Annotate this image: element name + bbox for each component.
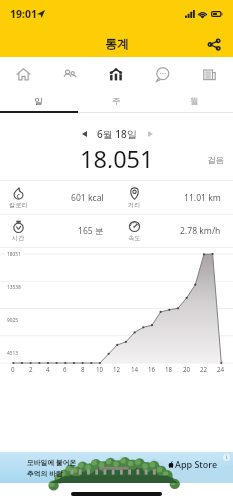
staticText: 2.78 km/h: [180, 225, 221, 237]
staticText: 18051: [7, 251, 21, 258]
staticText: 24: [217, 365, 225, 373]
staticText: 시간: [12, 234, 25, 242]
staticText: 일: [34, 96, 43, 107]
staticText: 속도: [128, 234, 141, 242]
button[interactable]: 시간: [0, 215, 116, 247]
staticText: 0: [11, 365, 15, 373]
staticText: 9025: [7, 317, 18, 324]
staticText: 16: [148, 365, 156, 373]
staticText: 칼로리: [9, 201, 28, 209]
staticText: 12: [113, 365, 121, 373]
staticText: 4513: [7, 350, 18, 357]
staticText: 11.01 km: [184, 192, 221, 204]
staticText: 20: [183, 365, 191, 373]
staticText: 22: [200, 365, 208, 373]
staticText: 주: [112, 96, 121, 107]
staticText: 거리: [128, 201, 141, 209]
staticText: 6월 18일: [97, 127, 137, 141]
staticText: 14: [131, 365, 139, 373]
button[interactable]: 일: [0, 91, 77, 113]
staticText: 18: [165, 365, 173, 373]
button[interactable]: Next day: [143, 127, 157, 141]
staticText: App Store: [175, 458, 218, 470]
staticText: 통계: [105, 36, 129, 51]
button[interactable]: Share: [200, 30, 228, 58]
button[interactable]: Previous day: [77, 127, 91, 141]
staticText: 601 kcal: [71, 192, 104, 204]
button[interactable]: 주: [77, 91, 155, 113]
staticText: 10: [96, 365, 104, 373]
staticText: 18,051: [80, 143, 154, 168]
staticText: 6: [63, 365, 67, 373]
staticText: 월: [190, 96, 199, 107]
button[interactable]: 모바일에 불어온: [0, 452, 233, 483]
button[interactable]: Friends: [46, 57, 92, 91]
staticText: 13538: [7, 284, 21, 291]
staticText: 추억의 바람: [27, 469, 63, 478]
button[interactable]: 월: [155, 91, 233, 113]
staticText: 165 분: [78, 225, 104, 237]
button[interactable]: Home: [0, 57, 46, 91]
staticText: i: [226, 454, 228, 461]
button[interactable]: 칼로리: [0, 181, 116, 214]
button[interactable]: 속도: [116, 215, 233, 247]
staticText: 4: [46, 365, 50, 373]
button[interactable]: Statistics: [92, 57, 139, 91]
staticText: 2: [29, 365, 33, 373]
staticText: 8: [81, 365, 85, 373]
staticText: 걸음: [207, 155, 224, 166]
button[interactable]: 거리: [116, 181, 233, 214]
staticText: 19:01: [10, 7, 37, 21]
staticText: 모바일에 불어온: [27, 458, 77, 467]
button[interactable]: News: [186, 57, 233, 91]
button[interactable]: Ad info: [223, 454, 230, 461]
button[interactable]: Chat: [139, 57, 186, 91]
